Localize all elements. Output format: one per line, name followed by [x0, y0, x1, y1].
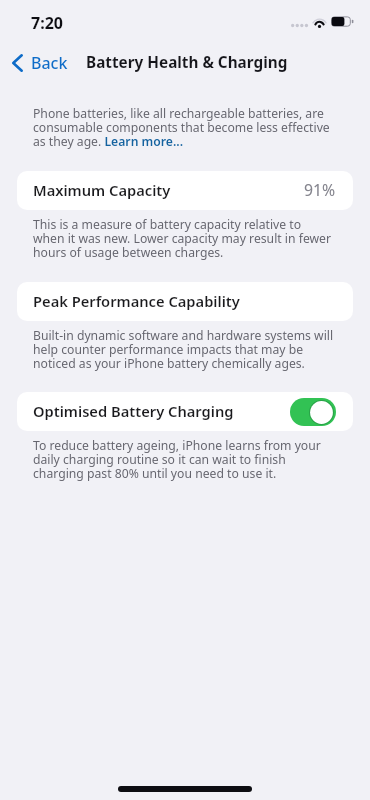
button[interactable]: Back	[6, 48, 76, 78]
staticText: Peak Performance Capability	[33, 291, 240, 311]
staticText: Battery Health & Charging	[86, 52, 288, 73]
staticText: This is a measure of battery capacity re…	[33, 216, 335, 261]
button[interactable]: Peak Performance Capability	[17, 282, 353, 321]
other: Wi-Fi	[311, 15, 329, 28]
staticText: 7:20	[31, 12, 63, 34]
button[interactable]: Maximum Capacity	[17, 171, 353, 210]
button[interactable]: Optimised Battery Charging	[17, 392, 353, 431]
staticText: 91%	[304, 179, 336, 201]
staticText: Built-in dynamic software and hardware s…	[33, 327, 335, 372]
staticText: Back	[31, 52, 68, 74]
staticText: To reduce battery ageing, iPhone learns …	[33, 437, 335, 482]
other: Battery	[331, 16, 355, 27]
button[interactable]: Optimised Battery Charging	[290, 398, 336, 426]
other: Cellular signal	[291, 23, 308, 28]
staticText: Optimised Battery Charging	[33, 401, 234, 421]
staticText: Phone batteries, like all rechargeable b…	[33, 105, 335, 150]
staticText: Maximum Capacity	[33, 180, 171, 200]
